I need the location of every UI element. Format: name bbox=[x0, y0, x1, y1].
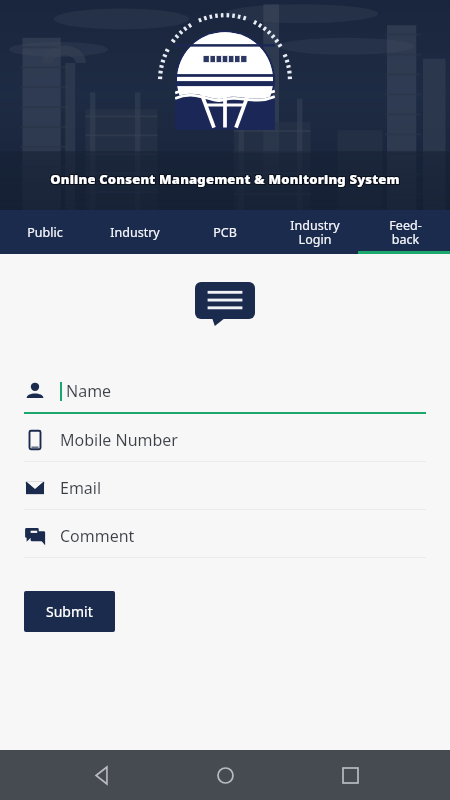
staticText: Online Consent Management & Monitoring S… bbox=[50, 171, 400, 189]
button[interactable]: Submit bbox=[24, 591, 115, 632]
button[interactable]: Industry bbox=[90, 210, 180, 254]
button[interactable]: Email bbox=[24, 467, 426, 515]
staticText: Online Consent Management & Monitoring S… bbox=[51, 169, 401, 187]
staticText: Industry bbox=[110, 224, 160, 241]
staticText: Online Consent Management & Monitoring S… bbox=[50, 169, 400, 187]
button[interactable]: PCB bbox=[180, 210, 270, 254]
staticText: Submit bbox=[46, 602, 93, 621]
button[interactable]: Recent apps bbox=[326, 751, 374, 799]
staticText: Online Consent Management & Monitoring S… bbox=[49, 170, 399, 188]
staticText: PCB bbox=[213, 224, 237, 241]
staticText: Email bbox=[60, 477, 102, 499]
staticText: Name bbox=[66, 380, 112, 402]
staticText: Online Consent Management & Monitoring S… bbox=[51, 170, 401, 188]
staticText: Comment bbox=[60, 525, 135, 547]
staticText: Public bbox=[27, 224, 63, 241]
staticText: Feed- back bbox=[389, 217, 422, 248]
button[interactable]: Mobile Number bbox=[24, 419, 426, 467]
staticText: Online Consent Management & Monitoring S… bbox=[49, 171, 399, 189]
button[interactable]: Industry Login bbox=[270, 210, 360, 254]
staticText: Industry Login bbox=[290, 217, 340, 248]
button[interactable]: Public bbox=[0, 210, 90, 254]
staticText: Online Consent Management & Monitoring S… bbox=[49, 169, 399, 187]
button[interactable]: Back bbox=[77, 751, 125, 799]
staticText: Mobile Number bbox=[60, 429, 178, 451]
staticText: Online Consent Management & Monitoring S… bbox=[51, 171, 401, 189]
button[interactable]: Feed- back bbox=[360, 210, 450, 254]
staticText: Online Consent Management & Monitoring S… bbox=[50, 170, 400, 188]
button[interactable]: Name bbox=[24, 370, 426, 419]
button[interactable]: Comment bbox=[24, 515, 426, 563]
button[interactable]: Home bbox=[201, 751, 249, 799]
